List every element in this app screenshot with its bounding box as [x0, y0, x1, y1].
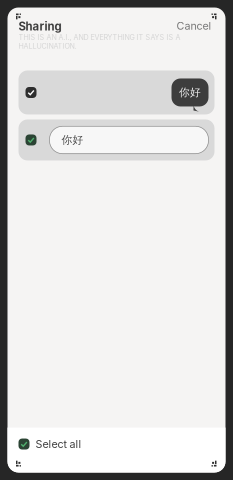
staticText: Select all — [35, 438, 81, 450]
staticText: Cancel — [176, 19, 211, 32]
staticText: Sharing — [18, 19, 61, 33]
staticText: 你好 — [179, 86, 201, 99]
button[interactable]: Cancel — [176, 19, 211, 32]
staticText: 你好 — [61, 133, 83, 147]
button[interactable]: 你好 — [18, 119, 214, 160]
button[interactable]: 你好 — [18, 70, 214, 114]
staticText: THIS IS AN A.I., AND EVERYTHING IT SAYS … — [18, 33, 180, 42]
staticText: HALLUCINATION. — [18, 42, 76, 50]
button[interactable]: Select all — [18, 438, 81, 450]
